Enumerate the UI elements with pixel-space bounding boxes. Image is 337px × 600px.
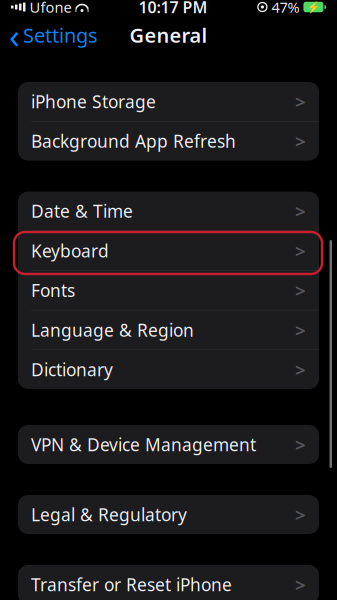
button[interactable]: Dictionary (18, 350, 319, 389)
staticText: General (129, 22, 207, 48)
staticText: > (295, 278, 306, 303)
staticText: Language & Region (31, 318, 194, 341)
button[interactable]: Fonts (18, 271, 319, 310)
staticText: Date & Time (31, 200, 133, 223)
staticText: Ufone (29, 0, 71, 17)
staticText: > (295, 502, 306, 527)
staticText: Dictionary (31, 358, 113, 381)
staticText: > (295, 89, 306, 114)
button[interactable]: iPhone Storage (18, 82, 319, 121)
staticText: > (295, 199, 306, 223)
button[interactable]: Background App Refresh (18, 122, 319, 161)
staticText: > (295, 432, 306, 457)
staticText: ‹ (9, 12, 20, 58)
staticText: Background App Refresh (31, 130, 236, 153)
button[interactable]: Language & Region (18, 310, 319, 349)
staticText: VPN & Device Management (31, 433, 256, 456)
staticText: Settings (23, 22, 98, 48)
staticText: > (295, 357, 306, 382)
button[interactable]: ‹ (0, 19, 104, 51)
staticText: > (295, 238, 306, 263)
staticText: ⚡ (307, 1, 320, 13)
button[interactable]: Legal & Regulatory (18, 495, 319, 534)
button[interactable]: Date & Time (18, 192, 319, 231)
staticText: > (295, 572, 306, 597)
staticText: Keyboard (31, 239, 109, 262)
button[interactable]: Keyboard (18, 231, 319, 270)
button[interactable]: Transfer or Reset iPhone (18, 565, 319, 600)
staticText: Fonts (31, 279, 75, 302)
staticText: > (295, 129, 306, 153)
staticText: Legal & Regulatory (31, 503, 187, 526)
staticText: > (295, 317, 306, 342)
button[interactable]: VPN & Device Management (18, 425, 319, 464)
staticText: iPhone Storage (31, 90, 156, 113)
staticText: 10:17 PM (138, 0, 207, 18)
staticText: 47% (271, 0, 299, 17)
staticText: Transfer or Reset iPhone (31, 573, 232, 596)
